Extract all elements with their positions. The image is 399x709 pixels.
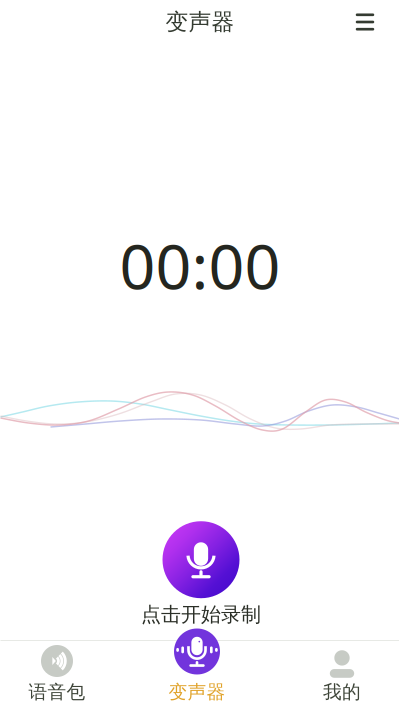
staticText: 我的 [323, 680, 361, 703]
button[interactable]: 语音包 [0, 626, 117, 709]
staticText: 00:00 [119, 223, 280, 307]
button[interactable]: 变声器 [137, 626, 257, 709]
staticText: 语音包 [28, 680, 85, 703]
button[interactable]: 我的 [282, 626, 399, 709]
button[interactable]: 点击开始录制 [141, 521, 261, 627]
button[interactable]: Menu [342, 0, 388, 45]
staticText: 变声器 [168, 680, 225, 703]
staticText: 点击开始录制 [141, 602, 261, 627]
staticText: 变声器 [165, 8, 234, 36]
